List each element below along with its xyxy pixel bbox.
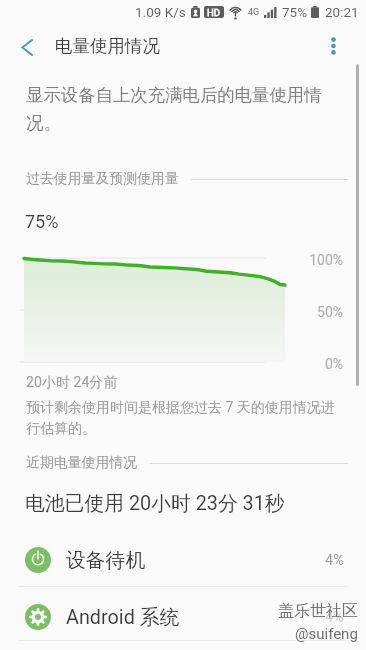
staticText: 75%	[25, 211, 59, 232]
staticText: 电量使用情况	[55, 35, 160, 57]
staticText: 设备待机	[66, 548, 146, 573]
staticText: HD	[207, 7, 221, 18]
button[interactable]: Android 系统	[0, 593, 366, 641]
staticText: 4%	[325, 609, 344, 626]
staticText: 近期电量使用情况	[26, 454, 138, 472]
button[interactable]: 设备待机	[0, 536, 366, 584]
staticText: 电池已使用 20小时 23分 31秒	[25, 491, 285, 516]
staticText: 75%	[282, 4, 308, 20]
staticText: Android 系统	[66, 605, 180, 630]
staticText: 1.09 K/s	[135, 4, 186, 20]
staticText: 4G	[248, 7, 260, 18]
staticText: 20:21	[325, 4, 359, 20]
staticText: 预计剩余使用时间是根据您过去 7 天的使用情况进行估算的。	[26, 399, 336, 437]
staticText: 4%	[325, 552, 344, 569]
staticText: 盖乐世社区	[278, 601, 358, 621]
staticText: @suifeng	[295, 625, 358, 643]
staticText: 显示设备自上次充满电后的电量使用情况。	[26, 84, 328, 134]
staticText: 50%	[317, 304, 343, 320]
staticText: 20小时 24分前	[26, 373, 118, 391]
button[interactable]: More options	[312, 24, 354, 66]
staticText: 过去使用量及预测使用量	[26, 170, 179, 188]
staticText: 0%	[324, 356, 343, 372]
button[interactable]: Back	[6, 24, 48, 66]
staticText: 100%	[309, 252, 343, 268]
